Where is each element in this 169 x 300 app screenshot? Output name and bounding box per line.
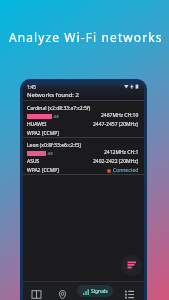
staticText: ASUS (27, 158, 40, 165)
staticText: Leon (x0:8f:33:e6:c2:f3) (27, 142, 81, 149)
button[interactable]: List (120, 285, 138, 300)
button[interactable]: Sort (121, 255, 142, 276)
staticText: 2402-2422 (20MHz) (93, 158, 139, 165)
staticText: WPA2 [CCMP] (27, 167, 59, 174)
staticText: 1:45 (27, 84, 36, 90)
staticText: Cardinal (x2:d8:33:a7:c2:5f) (27, 105, 91, 112)
staticText: 2447-2457 (20MHz) (93, 121, 139, 128)
button[interactable]: Leon (x0:8f:33:e6:c2:f3) (23, 138, 144, 174)
button[interactable]: Access points (27, 285, 45, 300)
button[interactable]: Location (53, 285, 71, 300)
button[interactable]: Signals (77, 285, 113, 297)
staticText: Signals (91, 288, 108, 295)
staticText: 2467MHz CH:10 (101, 112, 139, 119)
staticText: Networks found: 2 (27, 91, 79, 99)
staticText: -65 (47, 151, 53, 156)
staticText: Analyze Wi-Fi networks (9, 29, 163, 45)
staticText: Connected (113, 167, 139, 174)
staticText: HUAWEI (27, 121, 47, 128)
staticText: 2412MHz CH:1 (104, 149, 139, 156)
staticText: WPA2 [CCMP] (27, 130, 59, 137)
staticText: -65 (53, 114, 59, 119)
button[interactable]: Cardinal (x2:d8:33:a7:c2:5f) (23, 101, 144, 137)
